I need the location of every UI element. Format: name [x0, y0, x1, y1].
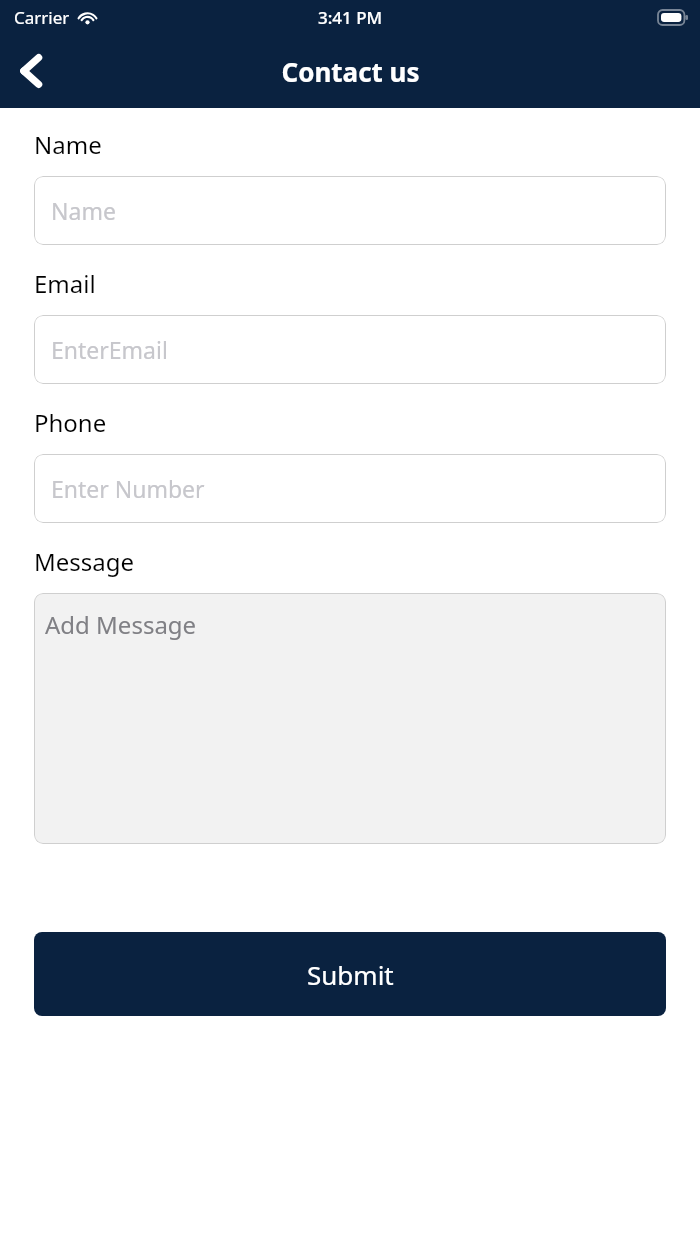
- button[interactable]: Add Message: [34, 593, 666, 844]
- button[interactable]: Name: [34, 176, 666, 245]
- staticText: Submit: [307, 957, 394, 992]
- button[interactable]: Submit: [34, 932, 666, 1016]
- staticText: Carrier: [14, 6, 70, 29]
- staticText: EnterEmail: [51, 334, 168, 365]
- staticText: Add Message: [45, 608, 197, 641]
- staticText: 3:41 PM: [318, 6, 383, 29]
- staticText: Email: [34, 267, 96, 300]
- staticText: Enter Number: [51, 473, 205, 504]
- staticText: Name: [51, 195, 116, 226]
- staticText: Name: [34, 128, 102, 161]
- staticText: Contact us: [281, 54, 420, 89]
- staticText: Message: [34, 545, 135, 578]
- staticText: Phone: [34, 406, 107, 439]
- button[interactable]: Back: [0, 40, 62, 102]
- button[interactable]: EnterEmail: [34, 315, 666, 384]
- button[interactable]: Enter Number: [34, 454, 666, 523]
